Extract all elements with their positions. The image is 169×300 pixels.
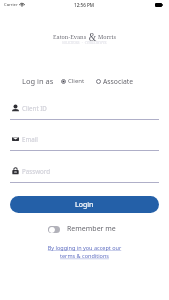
staticText: & xyxy=(87,30,98,43)
staticText: Associate xyxy=(103,77,134,86)
staticText: Email xyxy=(22,135,38,143)
staticText: Login xyxy=(75,200,94,210)
button[interactable]: Remember me xyxy=(48,224,116,234)
staticText: Eaton-Evans xyxy=(53,33,87,41)
button[interactable]: By logging in you accept our terms & con… xyxy=(44,244,125,260)
button[interactable]: Client xyxy=(61,77,85,85)
button[interactable]: Login xyxy=(10,196,159,213)
button[interactable]: Associate xyxy=(96,77,134,86)
staticText: 12:56 PM xyxy=(74,2,94,8)
staticText: Morris xyxy=(98,33,117,41)
staticText: Password xyxy=(22,167,50,175)
staticText: Remember me xyxy=(67,224,116,234)
staticText: Carrier xyxy=(4,2,18,8)
staticText: Log in as xyxy=(22,76,54,86)
staticText: Client xyxy=(68,77,85,85)
staticText: SOLICITORS · CYFREITHWYR xyxy=(62,41,107,45)
staticText: Client ID xyxy=(22,104,47,112)
